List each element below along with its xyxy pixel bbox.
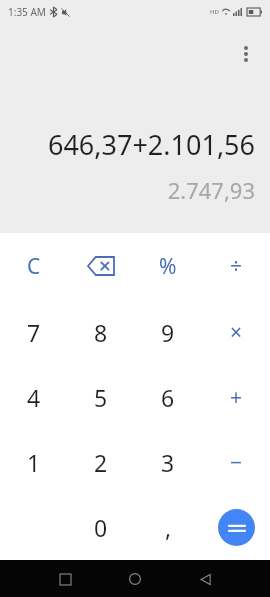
staticText: 2.747,93 — [167, 175, 255, 205]
staticText: + — [230, 383, 243, 412]
button[interactable]: % — [134, 233, 202, 299]
staticText: × — [230, 318, 243, 347]
button[interactable]: 6 — [134, 365, 202, 430]
staticText: 5 — [94, 382, 108, 413]
staticText: ÷ — [230, 252, 243, 281]
button[interactable]: 9 — [134, 299, 202, 365]
button[interactable]: 5 — [67, 365, 134, 430]
staticText: 7 — [27, 317, 41, 348]
staticText: 8 — [94, 317, 108, 348]
button[interactable]: 7 — [0, 299, 67, 365]
button[interactable]: , — [134, 495, 202, 560]
button[interactable]: Backspace — [67, 233, 134, 299]
button[interactable]: + — [202, 365, 270, 430]
staticText: 1:35 AM — [8, 5, 46, 19]
staticText: HD — [210, 8, 219, 16]
staticText: 3 — [161, 447, 175, 478]
button[interactable]: ÷ — [202, 233, 270, 299]
button[interactable]: More options — [230, 38, 262, 70]
staticText: 4 — [27, 382, 41, 413]
staticText: 6 — [161, 382, 175, 413]
staticText: − — [230, 448, 243, 477]
staticText: % — [159, 252, 177, 281]
staticText: 9 — [161, 317, 175, 348]
button[interactable]: × — [202, 299, 270, 365]
button[interactable]: Equals — [218, 509, 255, 546]
staticText: 2 — [94, 447, 108, 478]
button[interactable]: Back — [187, 561, 223, 597]
staticText: , — [165, 512, 172, 543]
button[interactable]: 0 — [67, 495, 134, 560]
button[interactable]: 4 — [0, 365, 67, 430]
staticText: 1 — [27, 447, 41, 478]
staticText: 0 — [94, 512, 108, 543]
button[interactable]: − — [202, 430, 270, 495]
button[interactable]: Home — [117, 561, 153, 597]
staticText: C — [27, 252, 41, 281]
staticText: 646,37+2.101,56 — [47, 126, 255, 163]
button[interactable]: 3 — [134, 430, 202, 495]
button[interactable]: 8 — [67, 299, 134, 365]
button[interactable]: C — [0, 233, 67, 299]
button[interactable]: Recents — [47, 561, 83, 597]
button[interactable]: 1 — [0, 430, 67, 495]
button[interactable]: 2 — [67, 430, 134, 495]
